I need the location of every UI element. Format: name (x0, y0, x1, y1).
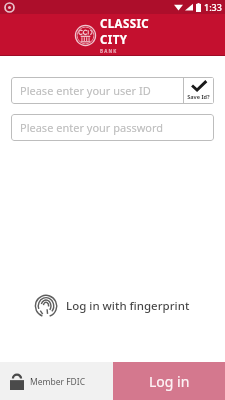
button[interactable]: Save Id (183, 77, 214, 104)
button[interactable]: Please enter your password (11, 114, 214, 141)
staticText: Log in with fingerprint (66, 298, 190, 314)
button[interactable]: Log in with fingerprint (0, 289, 225, 323)
staticText: CLASSIC (100, 16, 150, 32)
staticText: BANK (100, 48, 118, 54)
staticText: Please enter your password (20, 120, 164, 135)
button[interactable]: Member FDIC (0, 367, 94, 396)
button[interactable]: Log in (113, 362, 225, 400)
staticText: Please enter your user ID (20, 83, 151, 98)
staticText: Member FDIC (30, 376, 86, 388)
staticText: Log in (149, 372, 190, 391)
button[interactable]: Please enter your user ID (11, 77, 214, 104)
staticText: Save Id? (187, 93, 210, 100)
staticText: 1:33 (204, 1, 222, 13)
staticText: CITY (100, 32, 128, 48)
